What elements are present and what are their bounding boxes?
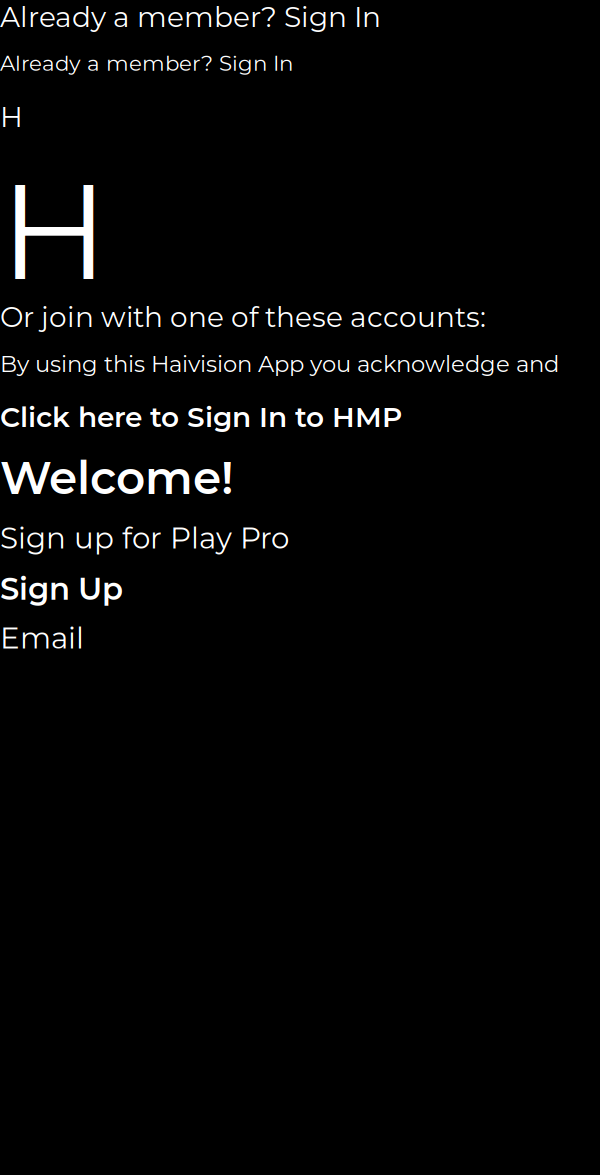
staticText: H (0, 100, 23, 134)
staticText: Sign Up (0, 570, 123, 607)
staticText: Already a member? Sign In (0, 50, 293, 76)
staticText: Welcome! (0, 450, 234, 505)
staticText: Or join with one of these accounts: (0, 300, 486, 334)
staticText: By using this Haivision App you acknowle… (0, 350, 559, 378)
staticText: H (0, 150, 108, 312)
staticText: Click here to Sign In to HMP (0, 400, 402, 434)
staticText: Sign up for Play Pro (0, 520, 289, 556)
staticText: Already a member? Sign In (0, 0, 381, 34)
staticText: Email (0, 620, 84, 656)
